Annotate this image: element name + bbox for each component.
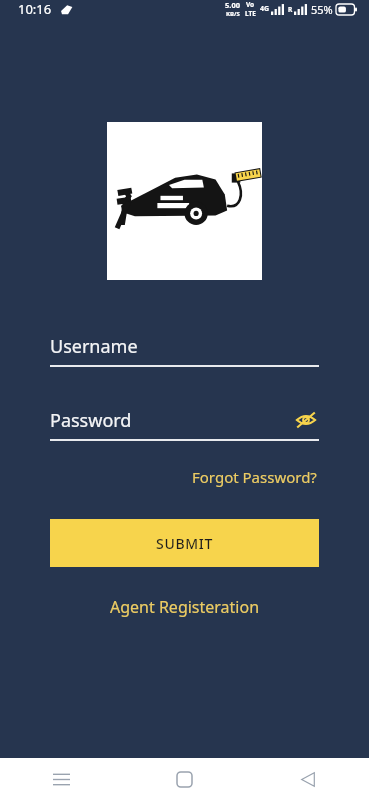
button[interactable]: Recent apps — [0, 758, 123, 800]
staticText: Username — [50, 334, 319, 359]
button[interactable]: Agent Registeration — [104, 593, 266, 621]
staticText: 55% — [311, 2, 333, 17]
button[interactable]: Home — [123, 758, 246, 800]
staticText: R — [288, 5, 293, 14]
staticText: Forgot Password? — [192, 467, 317, 487]
staticText: Password — [50, 408, 293, 433]
staticText: Agent Registeration — [110, 596, 260, 618]
staticText: Vo — [246, 0, 255, 9]
staticText: KB/S — [226, 10, 240, 18]
button[interactable]: Back — [246, 758, 369, 800]
button[interactable]: SUBMIT — [50, 519, 319, 567]
staticText: 4G — [260, 4, 270, 14]
staticText: LTE — [245, 9, 256, 18]
staticText: 10:16 — [18, 0, 52, 18]
button[interactable]: Toggle password visibility — [293, 407, 319, 433]
staticText: 5.00 — [225, 0, 240, 10]
staticText: SUBMIT — [156, 534, 214, 553]
button[interactable]: Forgot Password? — [190, 465, 319, 489]
